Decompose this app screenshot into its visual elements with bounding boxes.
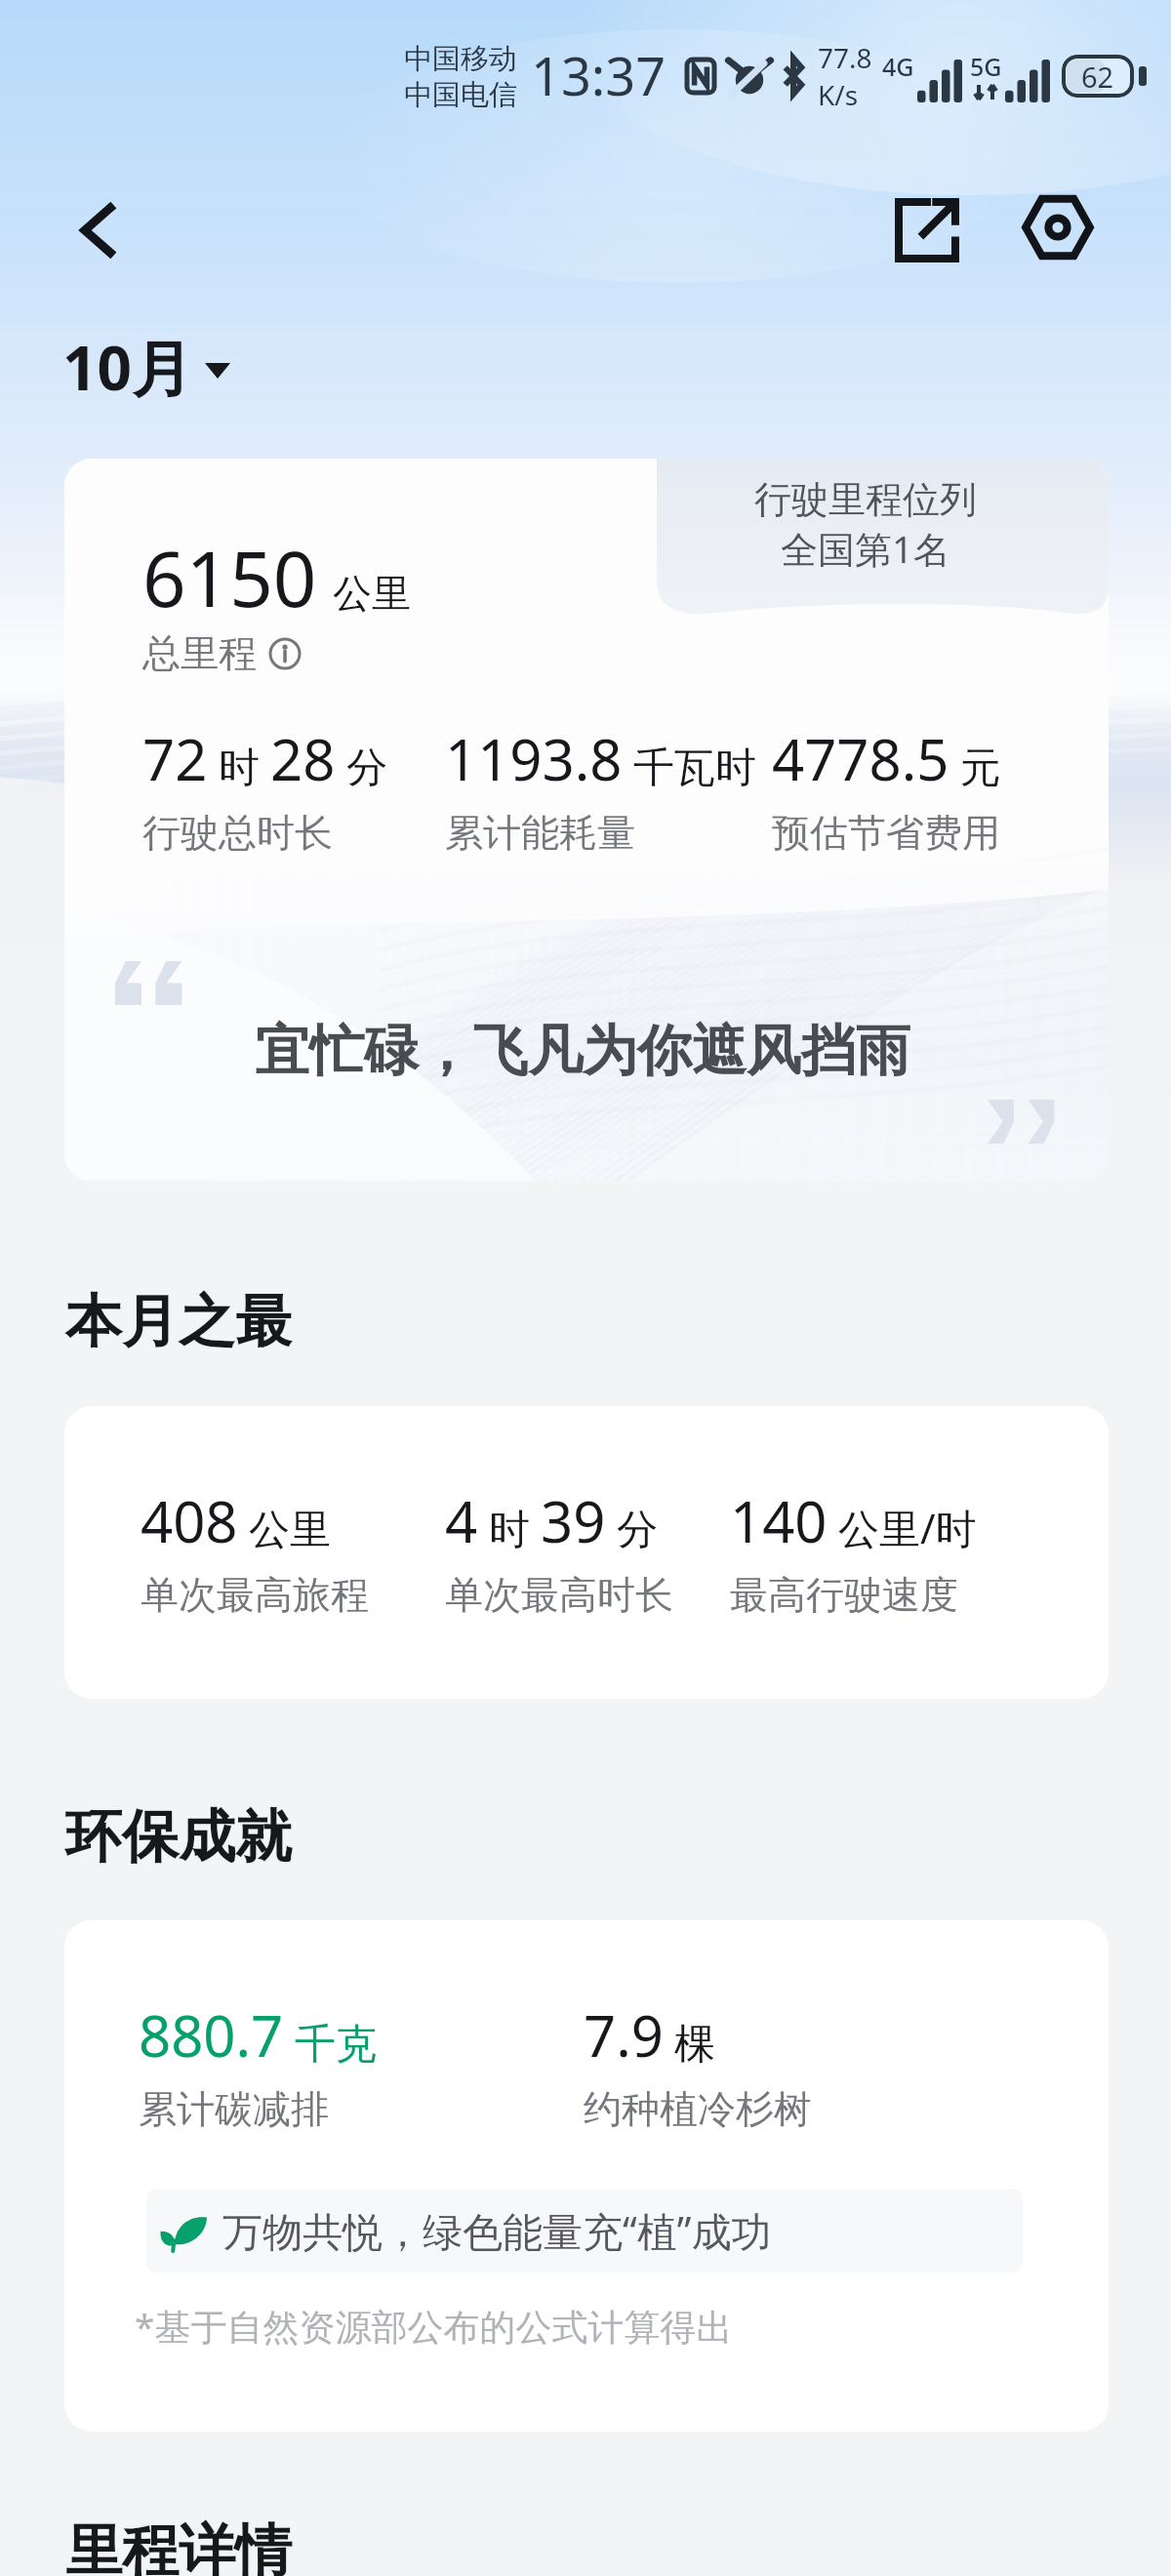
button[interactable]: 10月 — [57, 322, 236, 413]
staticText: 72 — [142, 720, 208, 797]
staticText: 10月 — [62, 326, 192, 409]
staticText: 元 — [949, 738, 1001, 793]
staticText: *基于自然资源部公布的公式计算得出 — [135, 2301, 733, 2351]
staticText: 环保成就 — [65, 1801, 292, 1872]
staticText: 中国电信 — [404, 77, 517, 113]
staticText: 宜忙碌，飞凡为你遮风挡雨 — [255, 1017, 910, 1086]
staticText: 408 — [141, 1482, 238, 1559]
staticText: 最高行驶速度 — [730, 1571, 958, 1619]
button[interactable]: Share — [880, 183, 974, 277]
staticText: 13:37 — [531, 39, 666, 109]
staticText: 累计能耗量 — [445, 809, 635, 857]
staticText: 预估节省费用 — [772, 809, 1000, 857]
staticText: 28 — [270, 720, 336, 797]
staticText: 本月之最 — [65, 1286, 292, 1357]
staticText: 千克 — [284, 2014, 377, 2070]
staticText: 累计碳减排 — [139, 2085, 329, 2133]
staticText: 约种植冷杉树 — [584, 2085, 812, 2133]
staticText: 中国移动 — [404, 41, 517, 77]
staticText: 单次最高旅程 — [141, 1571, 369, 1619]
staticText: 7.9 — [584, 1996, 664, 2073]
staticText: 1193.8 — [445, 720, 623, 797]
staticText: 4778.5 — [772, 720, 949, 797]
staticText: 公里/时 — [828, 1500, 977, 1555]
staticText: 62 — [1081, 58, 1114, 96]
button[interactable]: Settings — [1011, 181, 1105, 274]
button[interactable]: 万物共悦，绿色能量充“植”成功 — [146, 2189, 1023, 2273]
staticText: 时 — [208, 738, 270, 793]
staticText: 公里 — [333, 569, 411, 618]
staticText: 39 — [541, 1482, 606, 1559]
staticText: 行驶里程位列 — [754, 476, 977, 523]
staticText: 分 — [606, 1500, 658, 1555]
staticText: 5G — [970, 50, 1002, 83]
staticText: 6150 — [142, 526, 317, 629]
staticText: 880.7 — [139, 1996, 284, 2073]
staticText: 棵 — [664, 2014, 715, 2070]
button[interactable]: 408 — [64, 1406, 1109, 1699]
staticText: 4G — [882, 50, 914, 83]
staticText: 时 — [478, 1500, 541, 1555]
button[interactable]: 880.7 — [64, 1920, 1109, 2432]
staticText: 里程详情 — [65, 2516, 292, 2576]
button[interactable]: Back — [51, 183, 144, 277]
staticText: 总里程 — [142, 629, 257, 677]
staticText: 千瓦时 — [623, 738, 756, 793]
staticText: 公里 — [238, 1500, 331, 1555]
staticText: 全国第1名 — [781, 523, 950, 574]
staticText: 77.8 — [818, 39, 872, 76]
staticText: 万物共悦，绿色能量充“植”成功 — [222, 2203, 772, 2258]
button[interactable]: Info — [268, 637, 302, 670]
staticText: 4 — [445, 1482, 478, 1559]
staticText: 单次最高时长 — [445, 1571, 673, 1619]
staticText: 140 — [730, 1482, 828, 1559]
button[interactable]: 行驶里程位列 — [64, 459, 1109, 1181]
staticText: 分 — [336, 738, 387, 793]
staticText: 行驶总时长 — [142, 809, 333, 857]
staticText: K/s — [818, 76, 859, 113]
